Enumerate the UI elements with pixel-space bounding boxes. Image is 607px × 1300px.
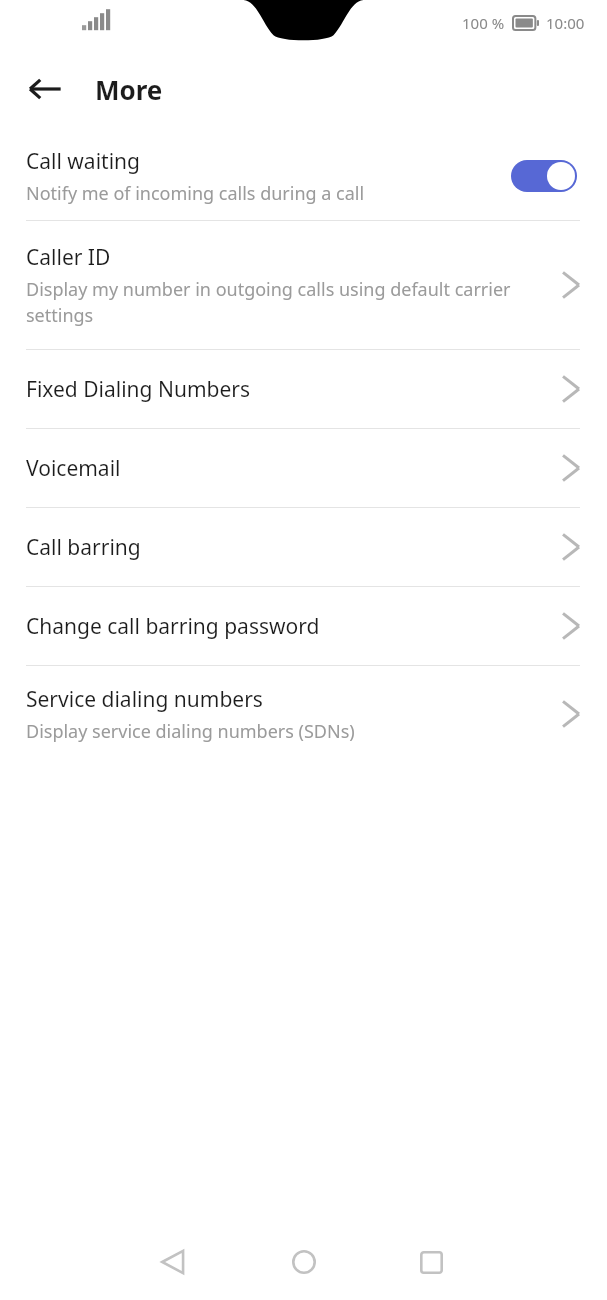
staticText: 100 % (462, 13, 505, 33)
staticText: Notify me of incoming calls during a cal… (26, 181, 365, 206)
button[interactable]: Call barring (0, 508, 607, 586)
button[interactable]: Recent apps (401, 1232, 461, 1292)
button[interactable]: Back (14, 58, 76, 120)
button[interactable]: Call waiting toggle (511, 160, 577, 192)
staticText: Call waiting (26, 147, 140, 176)
button[interactable]: Home (274, 1232, 334, 1292)
staticText: 10:00 (546, 13, 585, 33)
staticText: Service dialing numbers (26, 685, 263, 714)
button[interactable]: Service dialing numbers (0, 666, 607, 762)
staticText: Display service dialing numbers (SDNs) (26, 719, 355, 744)
staticText: Fixed Dialing Numbers (26, 375, 251, 404)
button[interactable]: Change call barring password (0, 587, 607, 665)
button[interactable]: Back (143, 1232, 203, 1292)
staticText: More (95, 72, 163, 107)
staticText: Caller ID (26, 243, 111, 272)
staticText: Call barring (26, 533, 141, 562)
button[interactable]: Call waiting (0, 132, 607, 220)
button[interactable]: Voicemail (0, 429, 607, 507)
button[interactable]: Fixed Dialing Numbers (0, 350, 607, 428)
staticText: Display my number in outgoing calls usin… (26, 277, 537, 328)
staticText: Change call barring password (26, 612, 320, 641)
button[interactable]: Caller ID (0, 221, 607, 349)
staticText: Voicemail (26, 454, 121, 483)
